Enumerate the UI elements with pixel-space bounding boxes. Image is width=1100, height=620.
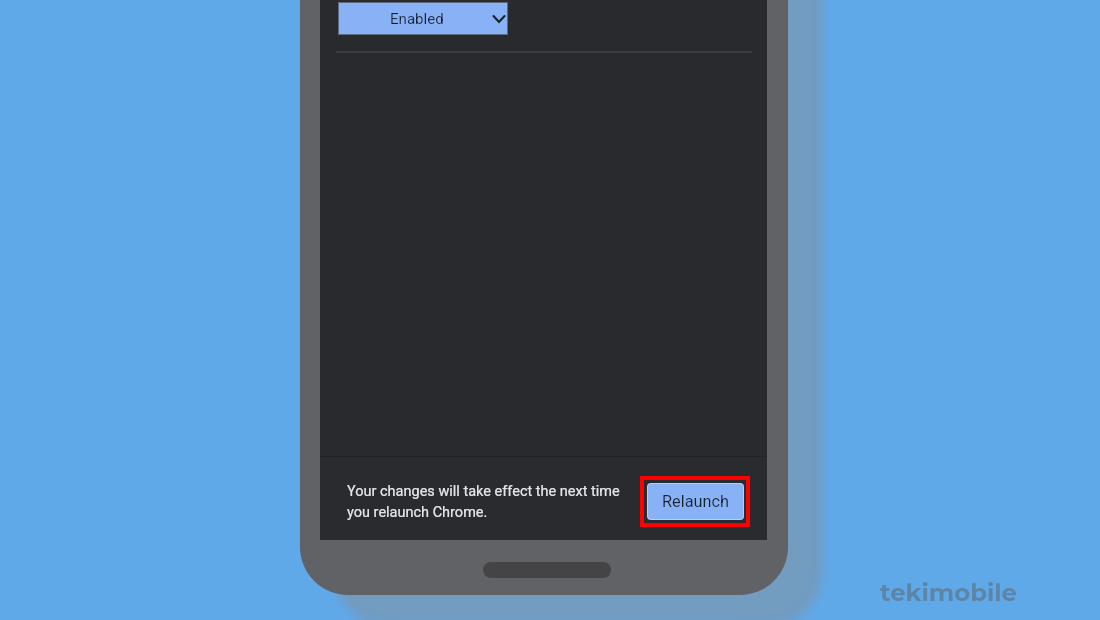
staticText: Enabled [390, 10, 444, 28]
button[interactable]: Relaunch [648, 484, 743, 519]
other: Expand [489, 11, 509, 27]
staticText: Relaunch [662, 492, 730, 511]
staticText: Your changes will take effect the next t… [347, 483, 647, 520]
button[interactable]: Enabled [339, 3, 507, 34]
button[interactable]: Home [483, 562, 611, 578]
staticText: tekimobile [880, 577, 1017, 607]
